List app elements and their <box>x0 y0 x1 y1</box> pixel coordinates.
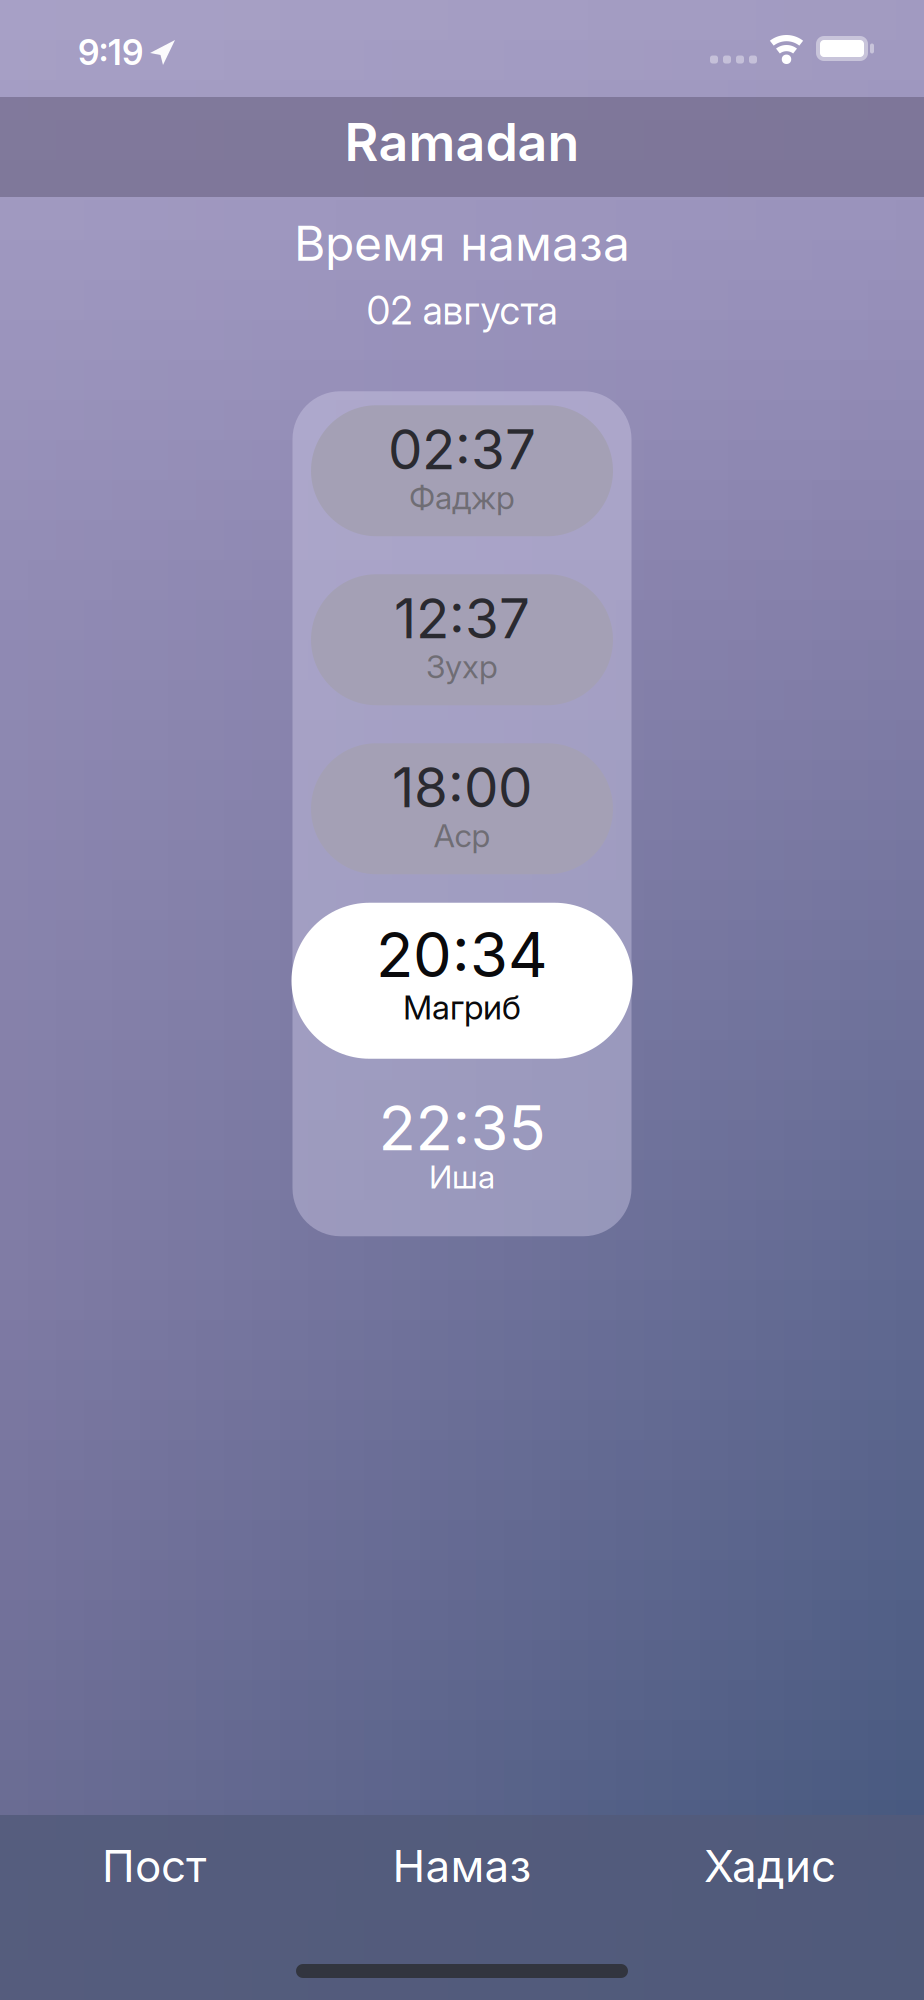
staticText: Иша <box>429 1158 495 1196</box>
staticText: Магриб <box>403 988 521 1027</box>
staticText: 9:19 <box>78 32 143 73</box>
staticText: Фаджр <box>409 479 515 516</box>
staticText: Зухр <box>426 648 498 685</box>
staticText: 22:35 <box>378 1092 545 1164</box>
staticText: 02 августа <box>366 288 557 333</box>
staticText: Пост <box>102 1840 206 1892</box>
staticText: Время намаза <box>294 215 630 272</box>
staticText: Хадис <box>704 1840 836 1892</box>
button[interactable]: Пост <box>0 1836 308 1896</box>
button[interactable]: Хадис <box>616 1836 924 1896</box>
staticText: 02:37 <box>388 417 536 482</box>
staticText: Аср <box>433 817 490 854</box>
staticText: Намаз <box>392 1840 531 1892</box>
button[interactable]: Намаз <box>308 1836 616 1896</box>
staticText: Ramadan <box>344 111 579 173</box>
staticText: 18:00 <box>392 755 532 820</box>
staticText: 20:34 <box>376 918 548 991</box>
staticText: 12:37 <box>394 586 530 651</box>
